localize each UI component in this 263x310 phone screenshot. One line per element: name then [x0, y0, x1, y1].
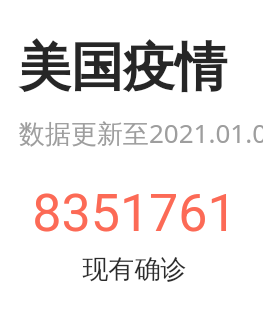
staticText: 8351761 [3, 183, 263, 244]
staticText: 现有确诊 [3, 253, 263, 286]
staticText: 美国疫情 [19, 35, 227, 101]
staticText: 数据更新至2021.01.06 [19, 115, 263, 151]
